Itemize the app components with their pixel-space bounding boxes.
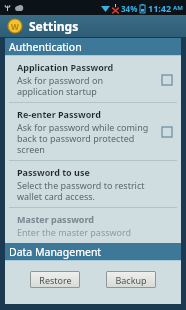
button[interactable]: Restore	[30, 271, 80, 288]
staticText: Data Management	[9, 245, 102, 259]
staticText: Settings	[29, 18, 79, 34]
staticText: Re-enter Password	[17, 108, 101, 120]
staticText: 34%	[121, 3, 138, 14]
staticText: Ask for password while coming back to pa…	[17, 121, 149, 155]
staticText: Enter the master password	[17, 226, 132, 238]
button[interactable]: Backup	[106, 271, 156, 288]
button[interactable]: Password to use	[5, 161, 181, 207]
button[interactable]: Toggle Re-enter Password	[160, 125, 173, 138]
button[interactable]: Re-enter Password	[5, 103, 181, 160]
staticText: Authentication	[9, 40, 82, 54]
staticText: 11:42	[148, 2, 172, 14]
button[interactable]: W	[0, 15, 186, 37]
button[interactable]: Toggle Application Password	[160, 73, 173, 86]
staticText: Backup	[115, 274, 147, 286]
button[interactable]: Master password	[5, 208, 181, 243]
staticText: Select the password to restrict wallet c…	[17, 179, 145, 202]
staticText: Password to use	[17, 166, 90, 178]
staticText: Application Password	[17, 61, 114, 73]
button[interactable]: Application Password	[5, 56, 181, 102]
staticText: AM	[173, 4, 183, 12]
staticText: Restore	[39, 274, 72, 286]
staticText: W	[11, 21, 19, 32]
staticText: Ask for password on application startup	[17, 74, 103, 97]
staticText: Master password	[17, 213, 95, 225]
